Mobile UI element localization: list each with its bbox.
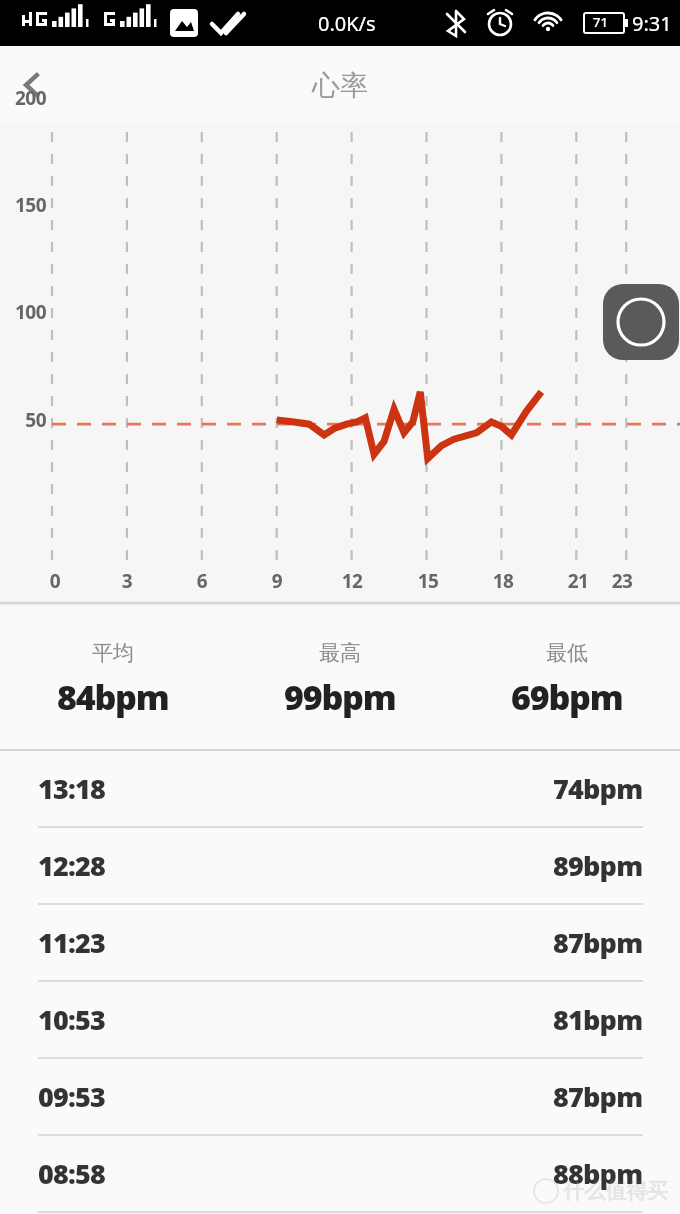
button[interactable]: 13:18 <box>0 751 680 828</box>
staticText: 13:18 <box>38 770 106 807</box>
button[interactable]: 平均 <box>0 606 226 720</box>
staticText: 100 <box>2 299 46 325</box>
staticText: 最高 <box>319 640 361 666</box>
button[interactable]: 最低 <box>453 606 680 720</box>
staticText: 74bpm <box>553 770 643 807</box>
staticText: 15 <box>408 568 448 594</box>
staticText: 150 <box>2 192 46 218</box>
staticText: 18 <box>483 568 523 594</box>
button[interactable]: 10:53 <box>0 982 680 1059</box>
staticText: 88bpm <box>553 1155 643 1192</box>
staticText: 81bpm <box>553 1001 643 1038</box>
staticText: 心率 <box>312 68 368 103</box>
button[interactable]: 11:23 <box>0 905 680 982</box>
button[interactable]: Back <box>0 53 64 117</box>
staticText: 87bpm <box>553 1078 643 1115</box>
staticText: 平均 <box>92 640 134 666</box>
staticText: 12 <box>332 568 372 594</box>
staticText: 08:58 <box>38 1155 106 1192</box>
staticText: 3 <box>107 568 147 594</box>
staticText: 最低 <box>546 640 588 666</box>
staticText: 99bpm <box>284 674 396 720</box>
staticText: 0 <box>35 568 75 594</box>
staticText: 200 <box>2 85 46 111</box>
staticText: 10:53 <box>38 1001 106 1038</box>
staticText: 0.0K/s <box>318 10 376 37</box>
staticText: 21 <box>558 568 598 594</box>
staticText: 11:23 <box>38 924 106 961</box>
button[interactable]: 09:53 <box>0 1059 680 1136</box>
staticText: 23 <box>602 568 642 594</box>
staticText: 09:53 <box>38 1078 106 1115</box>
staticText: 84bpm <box>57 674 169 720</box>
staticText: 什么值得买 <box>563 1178 668 1204</box>
staticText: 12:28 <box>38 847 106 884</box>
staticText: 9:31 <box>632 10 672 37</box>
button[interactable]: Watch device <box>603 284 679 360</box>
button[interactable]: 12:28 <box>0 828 680 905</box>
staticText: 71 <box>593 13 608 31</box>
staticText: 87bpm <box>553 924 643 961</box>
staticText: 69bpm <box>511 674 623 720</box>
button[interactable]: 最高 <box>226 606 453 720</box>
staticText: 89bpm <box>553 847 643 884</box>
button[interactable]: 08:58 <box>0 1136 680 1213</box>
staticText: 50 <box>2 407 46 433</box>
staticText: 9 <box>257 568 297 594</box>
staticText: 6 <box>182 568 222 594</box>
